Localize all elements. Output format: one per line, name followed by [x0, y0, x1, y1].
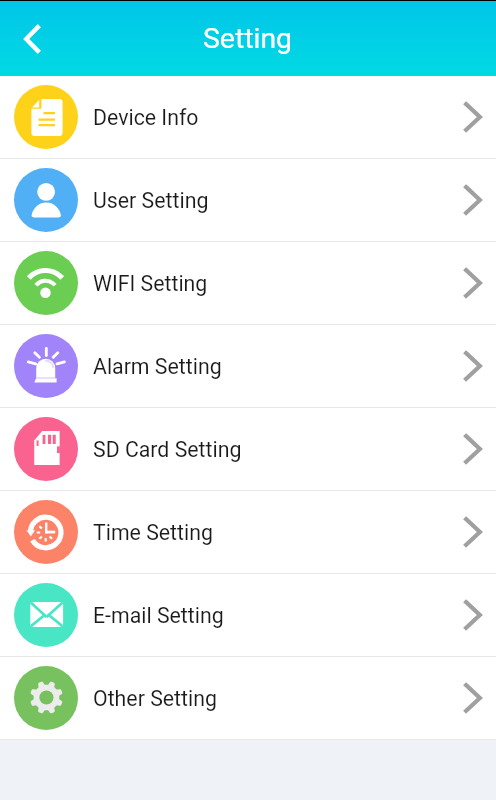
- button[interactable]: Other Setting: [0, 657, 496, 739]
- button[interactable]: E-mail Setting: [0, 574, 496, 656]
- staticText: User Setting: [93, 188, 209, 213]
- staticText: Setting: [203, 22, 293, 55]
- staticText: Time Setting: [93, 520, 213, 545]
- button[interactable]: Back: [0, 7, 64, 71]
- staticText: Other Setting: [93, 686, 217, 711]
- staticText: SD Card Setting: [93, 437, 242, 462]
- button[interactable]: Alarm Setting: [0, 325, 496, 407]
- staticText: Device Info: [93, 105, 199, 130]
- button[interactable]: WIFI Setting: [0, 242, 496, 324]
- button[interactable]: SD Card Setting: [0, 408, 496, 490]
- staticText: Alarm Setting: [93, 354, 222, 379]
- button[interactable]: Time Setting: [0, 491, 496, 573]
- staticText: E-mail Setting: [93, 603, 224, 628]
- staticText: WIFI Setting: [93, 271, 208, 296]
- button[interactable]: Device Info: [0, 76, 496, 158]
- button[interactable]: User Setting: [0, 159, 496, 241]
